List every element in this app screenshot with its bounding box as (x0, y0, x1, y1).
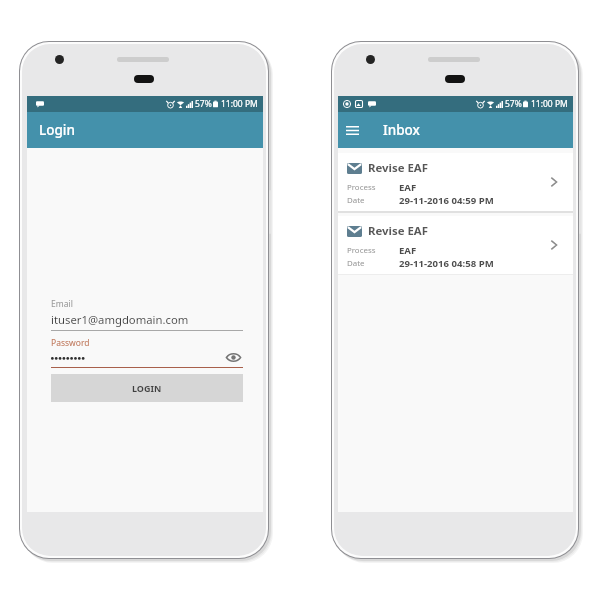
button[interactable]: Revise EAF (338, 153, 573, 211)
staticText: LOGIN (132, 382, 162, 394)
staticText: 57% (195, 98, 212, 110)
staticText: EAF (399, 181, 417, 194)
staticText: Date (347, 258, 399, 269)
staticText: ituser1@amgdomain.com (51, 312, 189, 327)
staticText: 11:00 PM (221, 98, 258, 110)
staticText: 29-11-2016 04:59 PM (399, 194, 494, 206)
button[interactable]: Show password (226, 352, 241, 363)
staticText: Process (347, 182, 399, 193)
staticText: Date (347, 195, 399, 206)
button[interactable]: LOGIN (51, 374, 243, 402)
staticText: Revise EAF (368, 160, 428, 176)
staticText: Login (39, 121, 75, 139)
staticText: EAF (399, 244, 417, 257)
button[interactable]: ituser1@amgdomain.com (51, 311, 243, 327)
button[interactable]: Password (51, 349, 201, 365)
staticText: Revise EAF (368, 223, 428, 239)
button[interactable]: Open navigation menu (345, 123, 359, 137)
staticText: Inbox (383, 121, 420, 139)
staticText: 11:00 PM (531, 98, 568, 110)
staticText: 29-11-2016 04:58 PM (399, 257, 494, 269)
staticText: Process (347, 245, 399, 256)
button[interactable]: Revise EAF (338, 216, 573, 274)
staticText: 57% (505, 98, 522, 110)
staticText: Password (51, 337, 90, 349)
staticText: Email (51, 298, 73, 310)
